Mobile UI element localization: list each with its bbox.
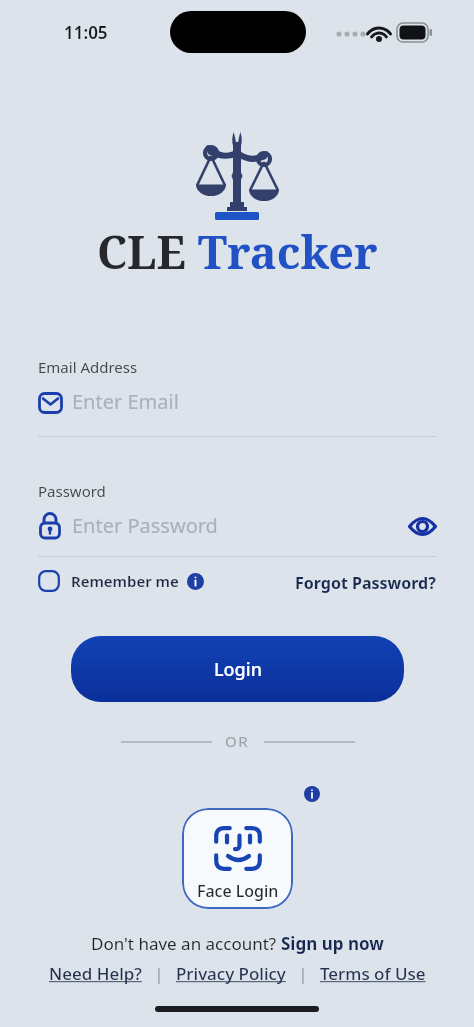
button[interactable]: Privacy Policy xyxy=(176,962,286,985)
button[interactable]: Don't have an account? xyxy=(0,932,474,955)
staticText: Password xyxy=(38,481,106,501)
staticText: Don't have an account? xyxy=(91,932,281,955)
staticText: | xyxy=(142,963,176,985)
staticText: OR xyxy=(225,731,250,751)
staticText: Email Address xyxy=(38,357,138,377)
button[interactable]: Face Login xyxy=(182,808,293,909)
staticText: 11:05 xyxy=(64,21,108,44)
button[interactable]: Enter Password xyxy=(38,508,436,557)
button[interactable]: Remember me xyxy=(38,570,204,592)
staticText: Tracker xyxy=(186,221,378,282)
button[interactable] xyxy=(408,515,437,538)
staticText: Enter Password xyxy=(72,512,218,539)
staticText: Sign up now xyxy=(281,932,384,955)
button[interactable]: Need Help? xyxy=(49,962,142,985)
staticText: | xyxy=(286,963,320,985)
button[interactable]: Login xyxy=(71,636,404,702)
button[interactable]: Enter Email xyxy=(38,385,436,437)
staticText: Face Login xyxy=(197,880,279,902)
staticText: Enter Email xyxy=(72,388,179,415)
staticText: Remember me xyxy=(71,571,179,591)
staticText: Login xyxy=(214,657,262,682)
staticText: CLE xyxy=(97,221,186,282)
button[interactable]: Terms of Use xyxy=(320,962,426,985)
button[interactable]: Forgot Password? xyxy=(295,572,436,594)
